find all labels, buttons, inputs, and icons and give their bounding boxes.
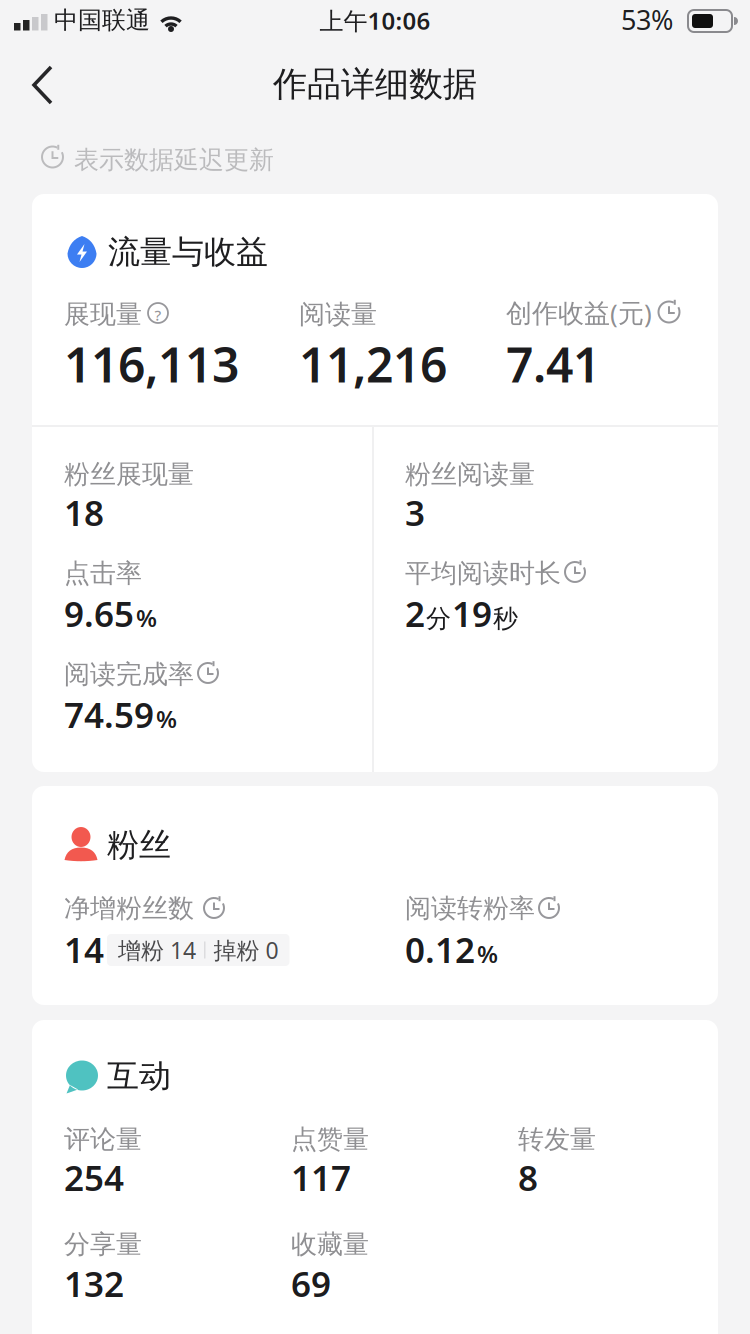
staticText: 展现量 (64, 298, 142, 330)
button[interactable]: Help (147, 302, 169, 324)
staticText: % (156, 703, 177, 735)
staticText: 53% (621, 2, 673, 37)
staticText: % (477, 938, 498, 970)
staticText: 转发量 (518, 1123, 596, 1155)
staticText: ? (154, 305, 161, 325)
staticText: 中国联通 (54, 6, 150, 35)
staticText: 0.12 (405, 926, 475, 973)
staticText: 74.59 (64, 691, 154, 738)
staticText: 分 (426, 603, 451, 634)
staticText: 分享量 (64, 1228, 142, 1260)
staticText: 9.65 (64, 590, 134, 637)
staticText: 阅读完成率 (64, 658, 194, 690)
staticText: 254 (64, 1154, 124, 1201)
staticText: 增粉 14 (118, 935, 196, 965)
staticText: 7.41 (506, 332, 600, 396)
staticText: 作品详细数据 (273, 63, 477, 105)
staticText: 秒 (493, 603, 518, 634)
staticText: 平均阅读时长 (405, 557, 561, 589)
staticText: % (136, 602, 157, 634)
staticText: 粉丝展现量 (64, 458, 194, 490)
staticText: 117 (291, 1154, 351, 1201)
staticText: 掉粉 0 (213, 935, 278, 965)
staticText: 69 (291, 1260, 331, 1307)
button[interactable]: Back (31, 64, 55, 106)
staticText: 创作收益(元) (506, 295, 652, 330)
staticText: 阅读转粉率 (405, 892, 535, 924)
staticText: 上午10:06 (319, 5, 430, 36)
staticText: 8 (518, 1154, 538, 1201)
staticText: 3 (405, 489, 425, 536)
staticText: 收藏量 (291, 1228, 369, 1260)
staticText: 132 (64, 1260, 124, 1307)
staticText: 评论量 (64, 1123, 142, 1155)
staticText: 粉丝 (107, 825, 171, 865)
staticText: 18 (64, 489, 104, 536)
staticText: 14 (64, 926, 104, 973)
staticText: 互动 (107, 1056, 171, 1096)
staticText: 粉丝阅读量 (405, 458, 535, 490)
staticText: 116,113 (64, 332, 239, 396)
staticText: 净增粉丝数 (64, 892, 194, 924)
staticText: 点赞量 (291, 1123, 369, 1155)
staticText: 表示数据延迟更新 (74, 144, 274, 175)
staticText: 2 (405, 590, 425, 637)
staticText: 19 (452, 590, 492, 637)
staticText: 阅读量 (299, 298, 377, 330)
staticText: 流量与收益 (108, 232, 268, 272)
staticText: 点击率 (64, 557, 142, 589)
staticText: 11,216 (299, 332, 447, 396)
